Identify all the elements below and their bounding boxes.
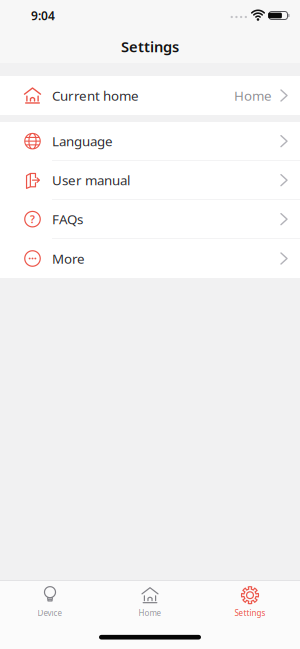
staticText: Home: [234, 87, 272, 104]
staticText: Settings: [121, 37, 179, 56]
staticText: Language: [52, 132, 113, 150]
button[interactable]: Device: [0, 586, 100, 618]
staticText: FAQs: [52, 210, 83, 228]
button[interactable]: Settings: [200, 586, 300, 618]
staticText: More: [52, 250, 85, 267]
button[interactable]: ?: [0, 200, 300, 239]
staticText: Settings: [234, 608, 265, 618]
button[interactable]: User manual: [0, 161, 300, 200]
staticText: 9:04: [31, 7, 55, 23]
staticText: User manual: [52, 171, 130, 189]
button[interactable]: Current home: [0, 76, 300, 115]
button[interactable]: Home: [100, 586, 200, 618]
button[interactable]: More: [0, 239, 300, 278]
button[interactable]: Language: [0, 122, 300, 161]
staticText: Current home: [52, 87, 139, 104]
staticText: Home: [138, 608, 161, 618]
staticText: Device: [37, 608, 62, 618]
staticText: ?: [30, 212, 35, 226]
